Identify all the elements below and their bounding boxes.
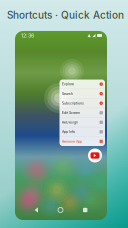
button[interactable]: YouTube (87, 147, 103, 163)
button[interactable]: Subscriptions (59, 99, 105, 108)
button[interactable]: Back (32, 204, 41, 216)
button[interactable]: Explore (59, 79, 105, 89)
button[interactable]: Search (59, 89, 105, 98)
staticText: Remove App (62, 139, 82, 143)
staticText: ReDesign (62, 120, 78, 124)
button[interactable]: Recent apps (80, 205, 90, 215)
staticText: Edit Screen (62, 111, 80, 115)
staticText: 12:36 (21, 32, 34, 39)
staticText: Shortcuts · Quick Action (7, 9, 124, 21)
staticText: Explore (62, 82, 74, 86)
button[interactable]: Edit Screen (59, 108, 105, 117)
staticText: Search (62, 92, 73, 96)
staticText: App Info (62, 130, 75, 134)
button[interactable]: Remove App (59, 137, 105, 146)
button[interactable]: ReDesign (59, 118, 105, 127)
button[interactable]: Home (55, 204, 66, 215)
staticText: Subscriptions (62, 101, 84, 105)
button[interactable]: App Info (59, 127, 105, 136)
